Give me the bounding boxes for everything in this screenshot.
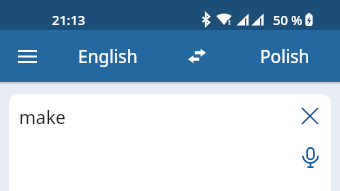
staticText: Polish xyxy=(260,44,310,68)
button[interactable]: Menu xyxy=(3,32,51,80)
button[interactable]: make xyxy=(9,94,289,191)
staticText: English xyxy=(78,44,138,68)
button[interactable]: Polish xyxy=(236,32,334,80)
button[interactable]: Swap languages xyxy=(173,32,221,80)
button[interactable]: English xyxy=(59,32,157,80)
button[interactable]: Clear xyxy=(293,99,327,133)
staticText: make xyxy=(19,105,66,130)
button[interactable]: Voice input xyxy=(293,140,327,174)
staticText: 21:13 xyxy=(52,11,86,29)
staticText: 50 % xyxy=(273,11,303,29)
